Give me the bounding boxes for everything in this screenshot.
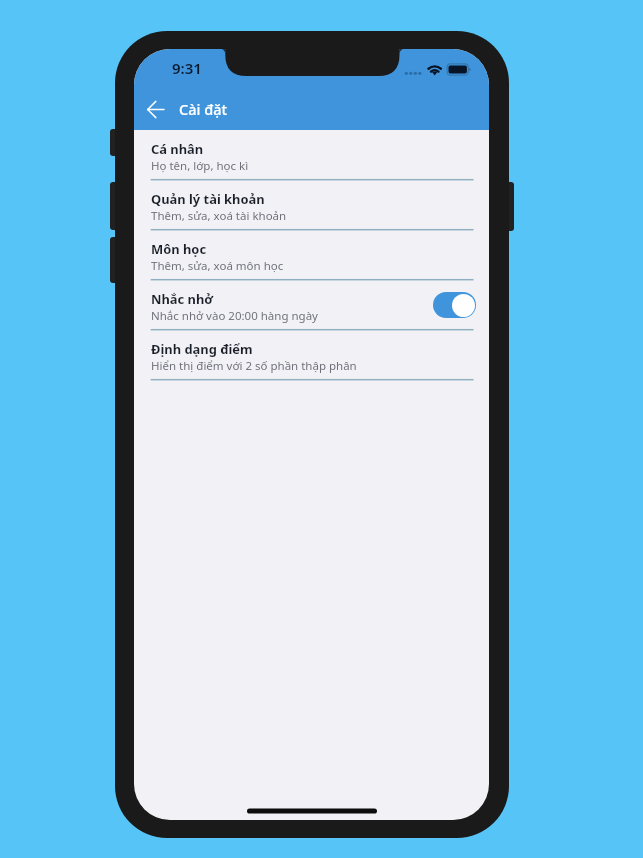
button[interactable]: Môn học (134, 230, 489, 280)
button[interactable]: Định dạng điểm (134, 330, 489, 380)
staticText: Cài đặt (179, 99, 228, 119)
staticText: Hiển thị điểm với 2 số phần thập phân (151, 358, 357, 374)
staticText: Cá nhân (151, 140, 204, 158)
staticText: Họ tên, lớp, học kì (151, 158, 249, 174)
staticText: Nhắc nhở vào 20:00 hàng ngày (151, 308, 318, 324)
staticText: Thêm, sửa, xoá môn học (151, 258, 284, 274)
staticText: Môn học (151, 240, 207, 258)
staticText: Định dạng điểm (151, 340, 253, 358)
button[interactable]: Cá nhân (134, 130, 489, 180)
button[interactable]: Back (137, 91, 173, 127)
button[interactable]: Reminder toggle, on (433, 292, 476, 318)
button[interactable]: Quản lý tài khoản (134, 180, 489, 230)
staticText: Thêm, sửa, xoá tài khoản (151, 208, 287, 224)
staticText: 9:31 (172, 58, 202, 78)
staticText: Quản lý tài khoản (151, 190, 265, 208)
staticText: Nhắc nhở (151, 290, 214, 308)
button[interactable]: Nhắc nhở (134, 280, 489, 330)
